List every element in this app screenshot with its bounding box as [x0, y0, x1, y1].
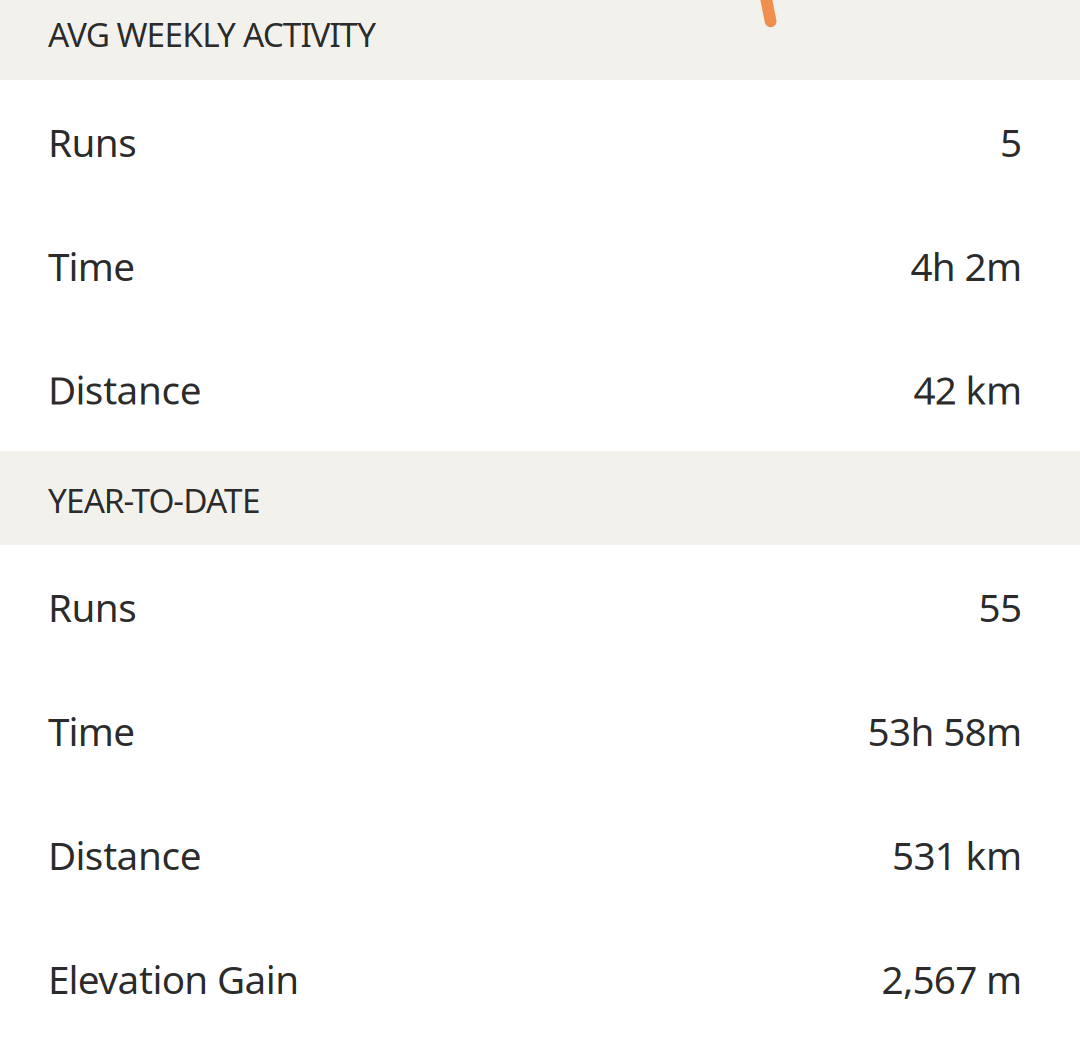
staticText: 531 km — [892, 829, 1022, 881]
staticText: Distance — [48, 364, 202, 415]
staticText: 5 — [1000, 116, 1022, 168]
button[interactable]: Distance — [0, 328, 1080, 451]
staticText: Distance — [48, 829, 202, 881]
staticText: Runs — [48, 116, 137, 168]
staticText: Time — [48, 705, 135, 757]
staticText: AVG WEEKLY ACTIVITY — [48, 12, 376, 56]
button[interactable]: Time — [0, 669, 1080, 793]
staticText: 2,567 m — [882, 953, 1022, 1005]
button[interactable]: Runs — [0, 545, 1080, 669]
staticText: 55 — [979, 581, 1022, 633]
staticText: 42 km — [913, 364, 1022, 415]
staticText: Runs — [48, 581, 137, 633]
staticText: 53h 58m — [868, 705, 1022, 757]
staticText: Time — [48, 240, 135, 292]
button[interactable]: Runs — [0, 80, 1080, 204]
staticText: YEAR-TO-DATE — [48, 478, 261, 522]
button[interactable]: Time — [0, 204, 1080, 328]
button[interactable]: Distance — [0, 793, 1080, 917]
button[interactable]: Elevation Gain — [0, 917, 1080, 1041]
staticText: Elevation Gain — [48, 953, 299, 1005]
staticText: 4h 2m — [910, 240, 1022, 292]
